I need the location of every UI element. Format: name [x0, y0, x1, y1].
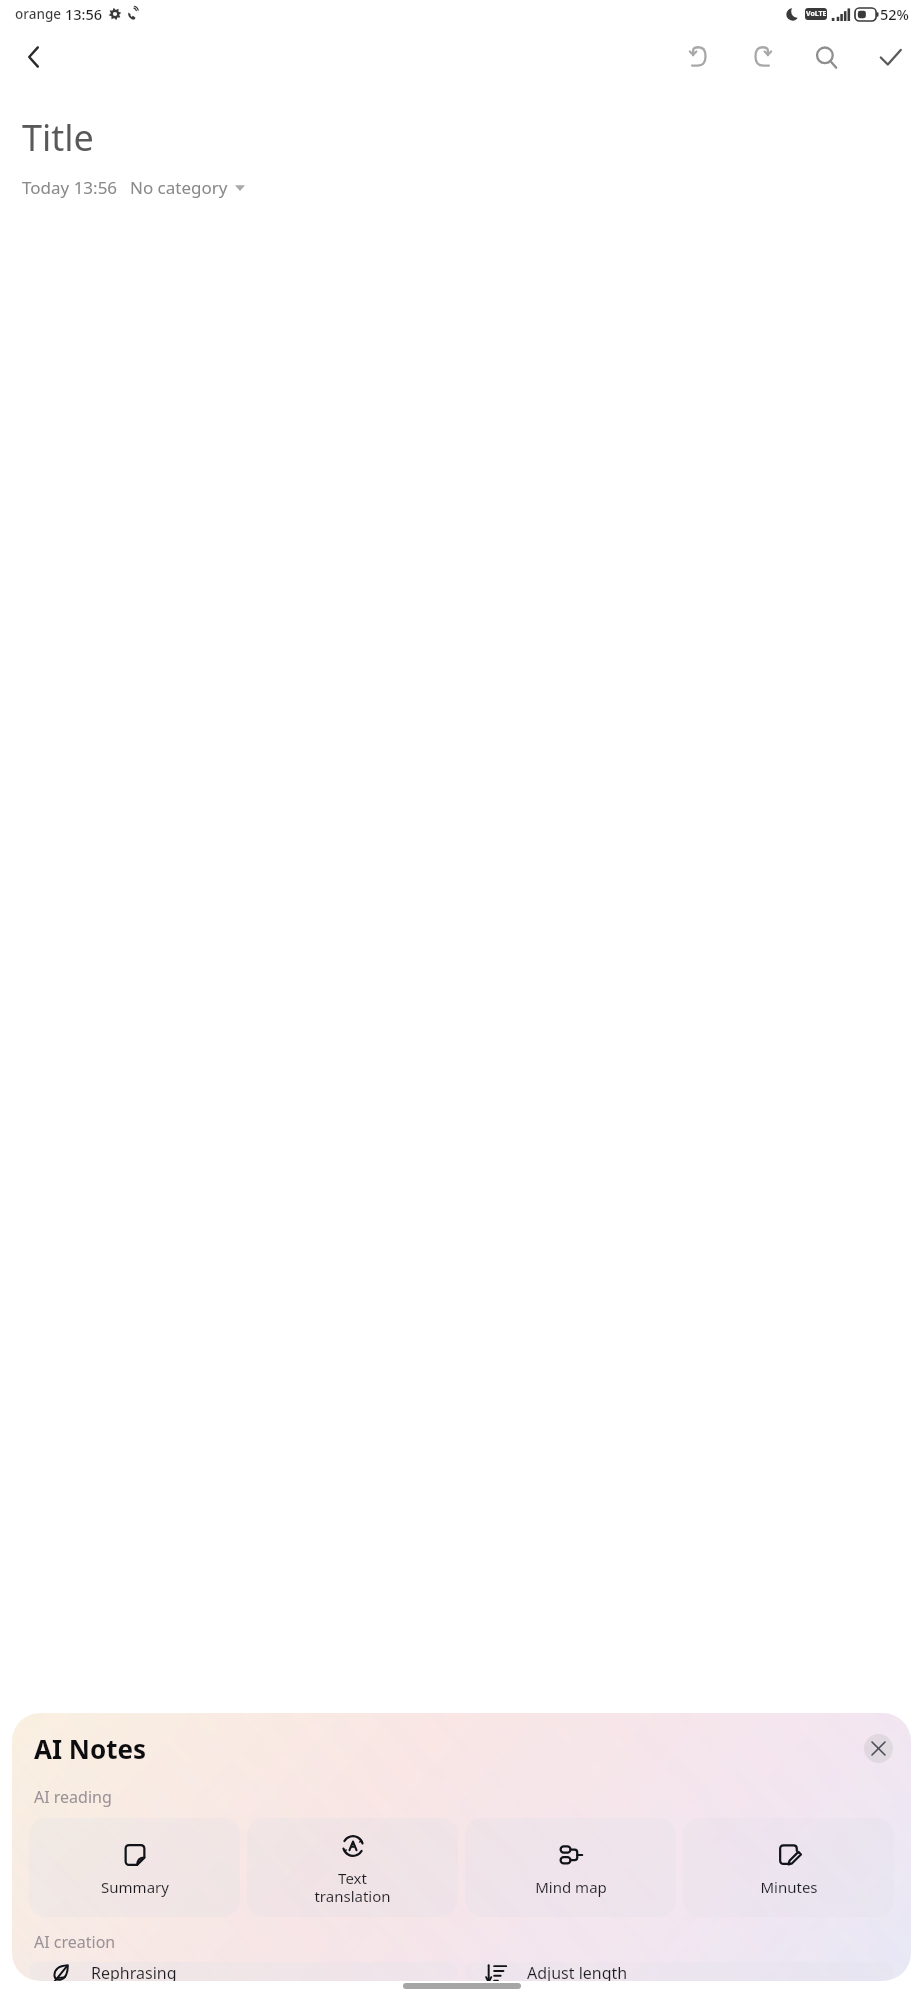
- button[interactable]: Undo: [675, 34, 721, 80]
- staticText: Rephrasing: [91, 1962, 177, 1981]
- button[interactable]: Summary: [29, 1818, 240, 1917]
- button[interactable]: Close: [864, 1734, 893, 1763]
- staticText: 52%: [880, 4, 909, 24]
- staticText: Mind map: [535, 1877, 607, 1897]
- staticText: Summary: [101, 1877, 169, 1897]
- button[interactable]: Back: [8, 31, 60, 83]
- staticText: Title: [22, 113, 94, 162]
- button[interactable]: No category: [130, 176, 245, 199]
- button[interactable]: Done: [867, 34, 913, 80]
- button[interactable]: Rephrasing: [29, 1962, 458, 1981]
- button[interactable]: Text translation: [247, 1818, 458, 1917]
- staticText: 13:56: [65, 4, 103, 24]
- staticText: Text translation: [314, 1868, 391, 1907]
- staticText: Adjust length: [527, 1962, 628, 1981]
- button[interactable]: Adjust length: [465, 1962, 894, 1981]
- button[interactable]: Minutes: [683, 1818, 894, 1917]
- button[interactable]: Mind map: [465, 1818, 676, 1917]
- staticText: AI reading: [34, 1786, 112, 1808]
- button[interactable]: Redo: [739, 34, 785, 80]
- staticText: AI creation: [34, 1931, 116, 1953]
- button[interactable]: Search: [803, 34, 849, 80]
- staticText: Today 13:56: [22, 176, 118, 199]
- staticText: Minutes: [760, 1877, 818, 1897]
- staticText: orange: [15, 5, 61, 23]
- staticText: No category: [130, 176, 228, 199]
- staticText: VoLTE: [806, 9, 827, 19]
- staticText: AI Notes: [34, 1731, 147, 1766]
